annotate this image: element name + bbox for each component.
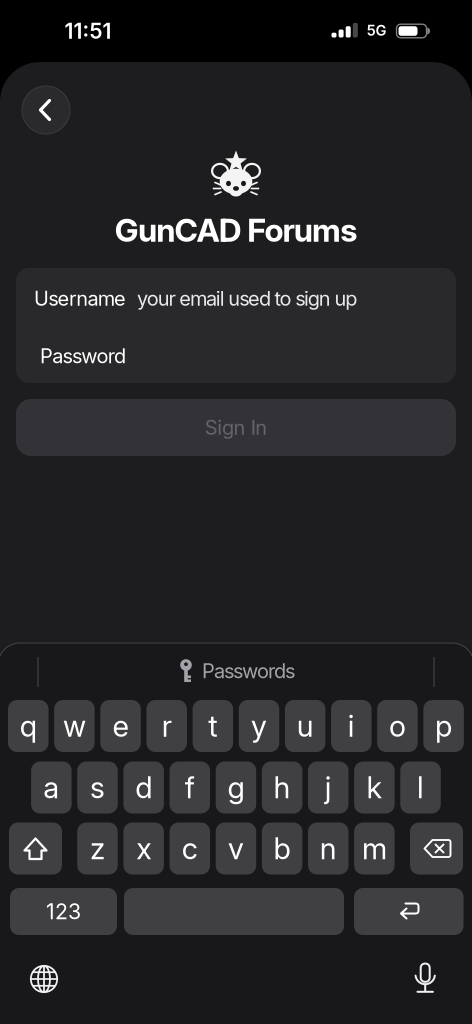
staticText: b <box>274 831 291 866</box>
button[interactable]: Sign In <box>16 399 456 456</box>
button[interactable]: b <box>262 822 302 874</box>
staticText: Username <box>34 287 126 310</box>
button[interactable]: j <box>308 761 348 813</box>
button[interactable]: s <box>77 761 118 813</box>
button[interactable]: a <box>31 761 72 813</box>
staticText: p <box>435 709 452 743</box>
staticText: h <box>274 770 291 805</box>
button[interactable]: Delete <box>410 822 463 874</box>
staticText: Sign In <box>205 416 267 439</box>
button[interactable]: Space <box>124 888 344 935</box>
staticText: 5G <box>366 22 386 39</box>
staticText: g <box>227 770 244 805</box>
staticText: i <box>348 709 355 743</box>
staticText: GunCAD Forums <box>115 211 357 249</box>
button[interactable]: w <box>54 700 95 752</box>
button[interactable]: p <box>423 700 464 752</box>
button[interactable]: Username <box>16 270 456 327</box>
button[interactable]: o <box>377 700 418 752</box>
button[interactable]: v <box>216 822 256 874</box>
button[interactable]: Dictation <box>404 955 448 999</box>
button[interactable]: Numbers <box>10 888 117 935</box>
staticText: c <box>182 831 198 866</box>
button[interactable]: Shift <box>9 822 62 874</box>
button[interactable]: Passwords autofill <box>179 649 295 693</box>
button[interactable]: g <box>216 761 256 813</box>
button[interactable]: e <box>100 700 141 752</box>
button[interactable]: Return <box>354 888 463 935</box>
staticText: e <box>112 709 128 743</box>
button[interactable]: x <box>123 822 164 874</box>
button[interactable]: q <box>8 700 48 752</box>
staticText: f <box>185 770 195 805</box>
staticText: x <box>136 831 151 866</box>
button[interactable]: y <box>239 700 279 752</box>
staticText: your email used to sign up <box>137 287 357 310</box>
button[interactable]: u <box>285 700 325 752</box>
staticText: s <box>90 770 105 805</box>
staticText: j <box>325 770 332 805</box>
staticText: 123 <box>46 899 81 924</box>
button[interactable]: c <box>170 822 210 874</box>
staticText: r <box>162 709 172 743</box>
staticText: n <box>320 831 337 866</box>
staticText: u <box>297 709 314 743</box>
staticText: m <box>362 831 387 866</box>
staticText: t <box>208 709 217 743</box>
button[interactable]: Back <box>22 86 70 134</box>
button[interactable]: k <box>354 761 395 813</box>
staticText: o <box>389 709 406 743</box>
button[interactable]: l <box>400 761 441 813</box>
staticText: y <box>251 709 267 743</box>
staticText: l <box>417 770 424 805</box>
staticText: 11:51 <box>64 18 111 44</box>
button[interactable]: n <box>308 822 348 874</box>
button[interactable]: i <box>331 700 372 752</box>
button[interactable]: m <box>354 822 395 874</box>
staticText: Password <box>40 344 126 368</box>
button[interactable]: f <box>169 761 210 813</box>
button[interactable]: Next keyboard <box>22 957 66 1001</box>
staticText: q <box>20 709 37 743</box>
button[interactable]: d <box>123 761 164 813</box>
staticText: d <box>135 770 152 805</box>
staticText: k <box>366 770 382 805</box>
staticText: v <box>228 831 244 866</box>
staticText: a <box>43 770 59 805</box>
staticText: w <box>63 709 86 743</box>
staticText: Passwords <box>202 659 295 683</box>
staticText: z <box>90 831 105 866</box>
button[interactable]: Password <box>16 327 456 385</box>
button[interactable]: h <box>262 761 302 813</box>
button[interactable]: z <box>77 822 118 874</box>
button[interactable]: r <box>146 700 187 752</box>
button[interactable]: t <box>193 700 233 752</box>
